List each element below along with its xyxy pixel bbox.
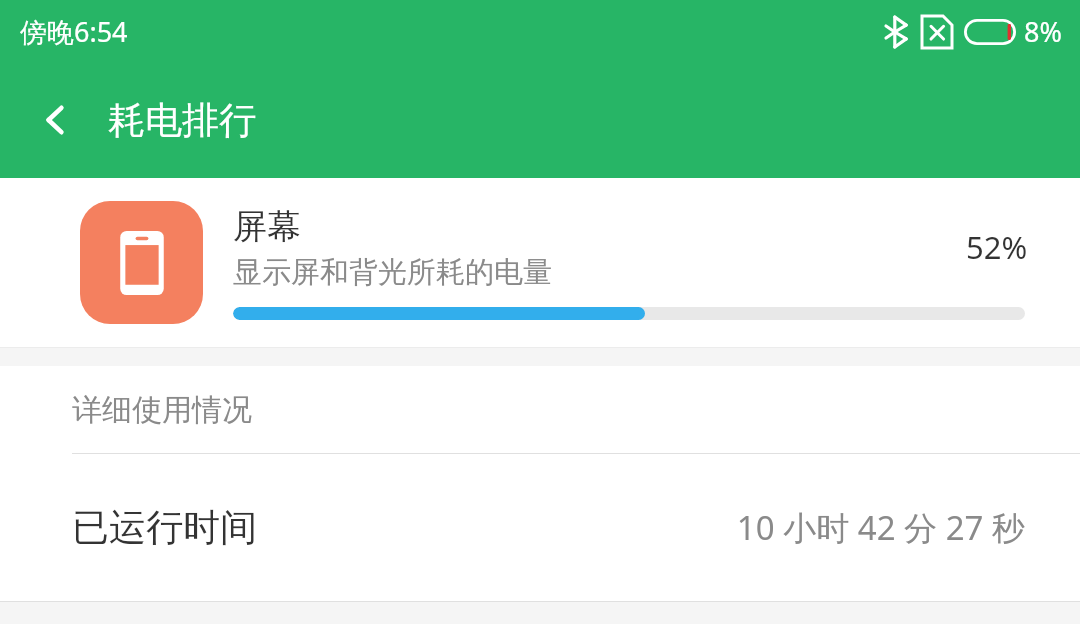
staticText: 耗电排行	[108, 97, 256, 144]
staticText: 8%	[1024, 13, 1062, 50]
staticText: 屏幕	[233, 205, 301, 248]
staticText: 已运行时间	[72, 504, 257, 551]
button[interactable]: Back	[22, 86, 90, 154]
staticText: 显示屏和背光所耗的电量	[233, 254, 552, 291]
button[interactable]: 已运行时间	[0, 454, 1080, 601]
staticText: 52%	[966, 226, 1028, 268]
staticText: 10 小时 42 分 27 秒	[736, 505, 1025, 550]
staticText: 详细使用情况	[72, 391, 252, 429]
staticText: 傍晚6:54	[20, 13, 128, 50]
button[interactable]: 屏幕	[0, 178, 1080, 347]
